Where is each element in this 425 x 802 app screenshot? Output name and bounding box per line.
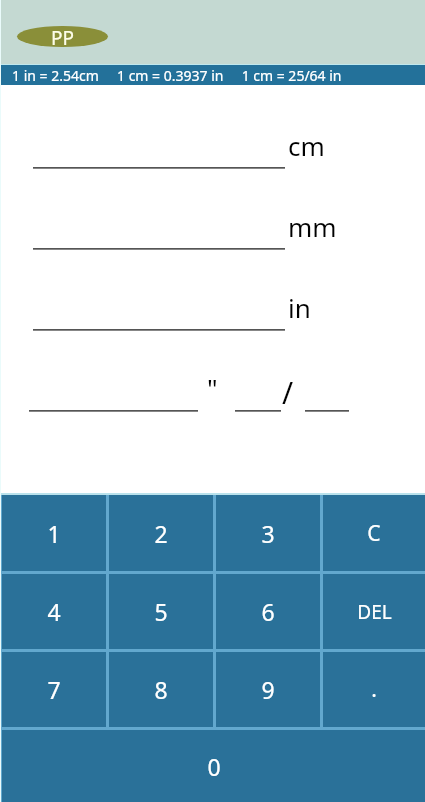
staticText: 1 in = 2.54cm 1 cm = 0.3937 in 1 cm = 25… [12,66,342,85]
staticText: 8 [154,674,168,705]
button[interactable]: Three [216,495,320,571]
staticText: 4 [47,596,61,627]
button[interactable]: One [2,495,106,571]
staticText: 5 [154,596,168,627]
staticText: C [367,519,381,548]
staticText: 7 [47,674,61,705]
staticText: / [282,372,294,413]
button[interactable]: Delete [323,574,425,649]
button[interactable]: fraction numerator [235,375,281,411]
button[interactable]: Seven [2,652,106,727]
button[interactable]: Zero [2,730,425,802]
staticText: in [288,290,311,325]
staticText: mm [288,209,337,244]
button[interactable]: centimetres value [33,132,285,168]
button[interactable]: PP app menu [17,26,108,47]
staticText: 3 [261,518,275,549]
button[interactable]: Five [109,574,213,649]
button[interactable]: Four [2,574,106,649]
staticText: DEL [357,599,392,625]
button[interactable]: Decimal point [323,652,425,727]
staticText: 9 [261,674,275,705]
button[interactable]: fraction denominator [305,375,349,411]
staticText: " [207,370,218,405]
button[interactable]: millimetres value [33,213,285,249]
staticText: 2 [154,518,168,549]
button[interactable]: whole inches value [29,375,198,411]
staticText: 1 [47,518,61,549]
button[interactable]: Two [109,495,213,571]
staticText: PP [51,25,74,46]
button[interactable]: Eight [109,652,213,727]
button[interactable]: inches value [33,294,285,330]
button[interactable]: Nine [216,652,320,727]
button[interactable]: Clear [323,495,425,571]
staticText: 6 [261,596,275,627]
staticText: . [371,675,377,704]
staticText: cm [288,128,325,163]
staticText: 0 [207,751,221,782]
button[interactable]: Six [216,574,320,649]
